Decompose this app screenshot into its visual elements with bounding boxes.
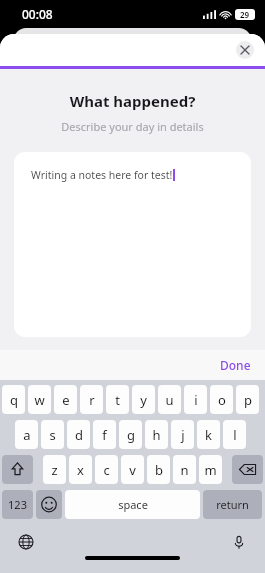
- button[interactable]: t: [106, 385, 129, 414]
- button[interactable]: Emoji: [36, 490, 62, 519]
- staticText: s: [49, 426, 56, 444]
- staticText: 123: [8, 497, 27, 512]
- staticText: f: [102, 426, 107, 444]
- button[interactable]: Close: [236, 41, 254, 59]
- button[interactable]: p: [236, 385, 259, 414]
- button[interactable]: a: [15, 420, 38, 449]
- button[interactable]: u: [158, 385, 181, 414]
- button[interactable]: Shift: [2, 455, 33, 484]
- staticText: return: [216, 497, 249, 512]
- button[interactable]: e: [54, 385, 77, 414]
- button[interactable]: y: [132, 385, 155, 414]
- button[interactable]: z: [43, 455, 66, 484]
- staticText: b: [155, 461, 163, 479]
- button[interactable]: i: [184, 385, 207, 414]
- staticText: m: [204, 461, 217, 479]
- staticText: t: [115, 391, 120, 409]
- button[interactable]: f: [93, 420, 116, 449]
- staticText: y: [140, 391, 147, 409]
- staticText: z: [51, 461, 58, 479]
- button[interactable]: h: [145, 420, 168, 449]
- button[interactable]: k: [197, 420, 220, 449]
- staticText: Describe your day in details: [0, 119, 265, 134]
- button[interactable]: x: [69, 455, 92, 484]
- button[interactable]: j: [171, 420, 194, 449]
- button[interactable]: Dictation: [229, 532, 249, 552]
- button[interactable]: d: [67, 420, 90, 449]
- staticText: c: [103, 461, 110, 479]
- button[interactable]: o: [210, 385, 233, 414]
- staticText: n: [180, 461, 189, 479]
- staticText: u: [165, 391, 174, 409]
- staticText: space: [118, 497, 148, 512]
- staticText: r: [89, 391, 95, 409]
- staticText: What happened?: [0, 91, 265, 111]
- button[interactable]: b: [147, 455, 170, 484]
- staticText: g: [127, 426, 135, 444]
- staticText: w: [34, 391, 45, 409]
- staticText: o: [218, 391, 226, 409]
- button[interactable]: Change keyboard language: [16, 532, 36, 552]
- button[interactable]: Writing a notes here for test!: [14, 152, 251, 337]
- button[interactable]: m: [199, 455, 222, 484]
- button[interactable]: v: [121, 455, 144, 484]
- button[interactable]: g: [119, 420, 142, 449]
- staticText: j: [181, 426, 185, 444]
- staticText: l: [233, 426, 237, 444]
- staticText: Done: [220, 357, 251, 373]
- staticText: d: [75, 426, 83, 444]
- button[interactable]: s: [41, 420, 64, 449]
- staticText: k: [205, 426, 212, 444]
- staticText: a: [23, 426, 31, 444]
- button[interactable]: q: [2, 385, 25, 414]
- staticText: 29: [240, 9, 250, 20]
- button[interactable]: r: [80, 385, 103, 414]
- button[interactable]: l: [223, 420, 246, 449]
- button[interactable]: c: [95, 455, 118, 484]
- staticText: e: [62, 391, 70, 409]
- staticText: x: [77, 461, 84, 479]
- button[interactable]: w: [28, 385, 51, 414]
- button[interactable]: Done: [206, 353, 265, 377]
- button[interactable]: n: [173, 455, 196, 484]
- button[interactable]: 123: [2, 490, 33, 519]
- button[interactable]: space: [65, 490, 200, 519]
- staticText: p: [244, 391, 252, 409]
- staticText: 00:08: [22, 6, 53, 22]
- button[interactable]: return: [203, 490, 262, 519]
- staticText: Writing a notes here for test!: [31, 168, 173, 182]
- staticText: h: [152, 426, 161, 444]
- staticText: q: [10, 391, 18, 409]
- staticText: v: [129, 461, 136, 479]
- button[interactable]: Backspace: [232, 455, 263, 484]
- staticText: i: [194, 391, 198, 409]
